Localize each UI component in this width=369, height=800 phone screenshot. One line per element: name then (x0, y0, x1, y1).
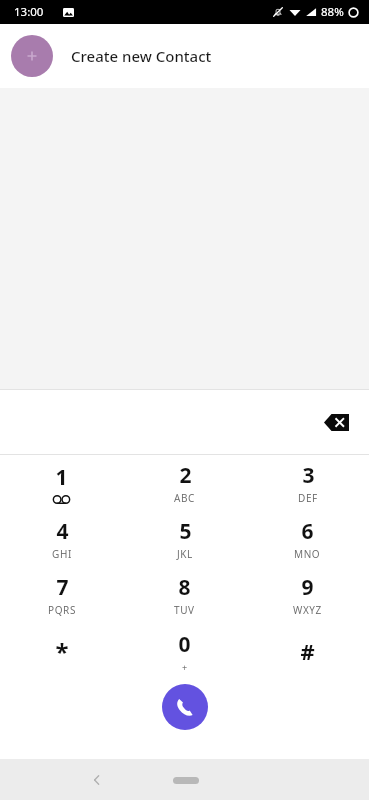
button[interactable]: 9 (246, 567, 369, 623)
button[interactable]: Backspace (316, 402, 356, 442)
staticText: 5 (179, 517, 192, 546)
staticText: 7 (56, 573, 69, 602)
staticText: * (55, 635, 69, 668)
staticText: GHI (52, 547, 72, 561)
staticText: PQRS (48, 603, 76, 617)
staticText: TUV (174, 603, 195, 617)
staticText: 1 (55, 463, 68, 492)
staticText: 8 (178, 573, 191, 602)
staticText: 88% (321, 4, 344, 20)
button[interactable]: 3 (246, 455, 369, 511)
staticText: 9 (301, 573, 314, 602)
staticText: 4 (56, 517, 69, 546)
button[interactable]: 5 (123, 511, 246, 567)
button[interactable]: 2 (123, 455, 246, 511)
staticText: DEF (298, 491, 318, 505)
staticText: 13:00 (14, 4, 44, 20)
staticText: WXYZ (293, 603, 322, 617)
staticText: + (182, 661, 188, 673)
staticText: MNO (294, 547, 321, 561)
button[interactable]: * (0, 623, 123, 679)
staticText: 6 (301, 517, 314, 546)
staticText: # (300, 636, 315, 666)
button[interactable]: 8 (123, 567, 246, 623)
button[interactable]: 4 (0, 511, 123, 567)
button[interactable]: 7 (0, 567, 123, 623)
staticText: JKL (177, 547, 193, 561)
staticText: ABC (174, 491, 196, 505)
button[interactable]: 0 (123, 623, 246, 679)
staticText: 0 (178, 630, 191, 659)
button[interactable]: # (246, 623, 369, 679)
staticText: 3 (302, 461, 315, 490)
button[interactable]: 1 (0, 455, 123, 511)
button[interactable]: Back (80, 763, 114, 797)
button[interactable]: Home (170, 763, 202, 797)
staticText: 2 (179, 461, 192, 490)
button[interactable]: Call (162, 684, 208, 730)
button[interactable]: Create new Contact (0, 24, 369, 88)
staticText: Create new Contact (71, 46, 212, 66)
button[interactable]: 6 (246, 511, 369, 567)
